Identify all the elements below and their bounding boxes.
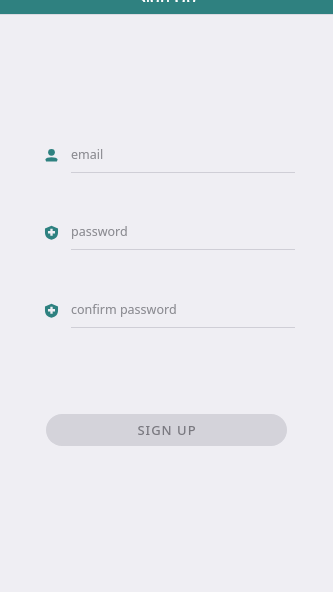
staticText: password bbox=[71, 223, 128, 240]
button[interactable]: SIGN UP bbox=[46, 414, 287, 446]
button[interactable]: Sign Up bbox=[0, 0, 333, 14]
staticText: confirm password bbox=[71, 301, 177, 318]
staticText: email bbox=[71, 146, 104, 163]
other: Security bbox=[44, 303, 59, 318]
other: Person bbox=[44, 148, 59, 163]
staticText: SIGN UP bbox=[137, 421, 197, 439]
button[interactable]: Security bbox=[0, 296, 333, 340]
button[interactable]: Security bbox=[0, 218, 333, 262]
button[interactable]: Person bbox=[0, 141, 333, 185]
staticText: Sign Up bbox=[137, 0, 196, 2]
other: Security bbox=[44, 225, 59, 240]
